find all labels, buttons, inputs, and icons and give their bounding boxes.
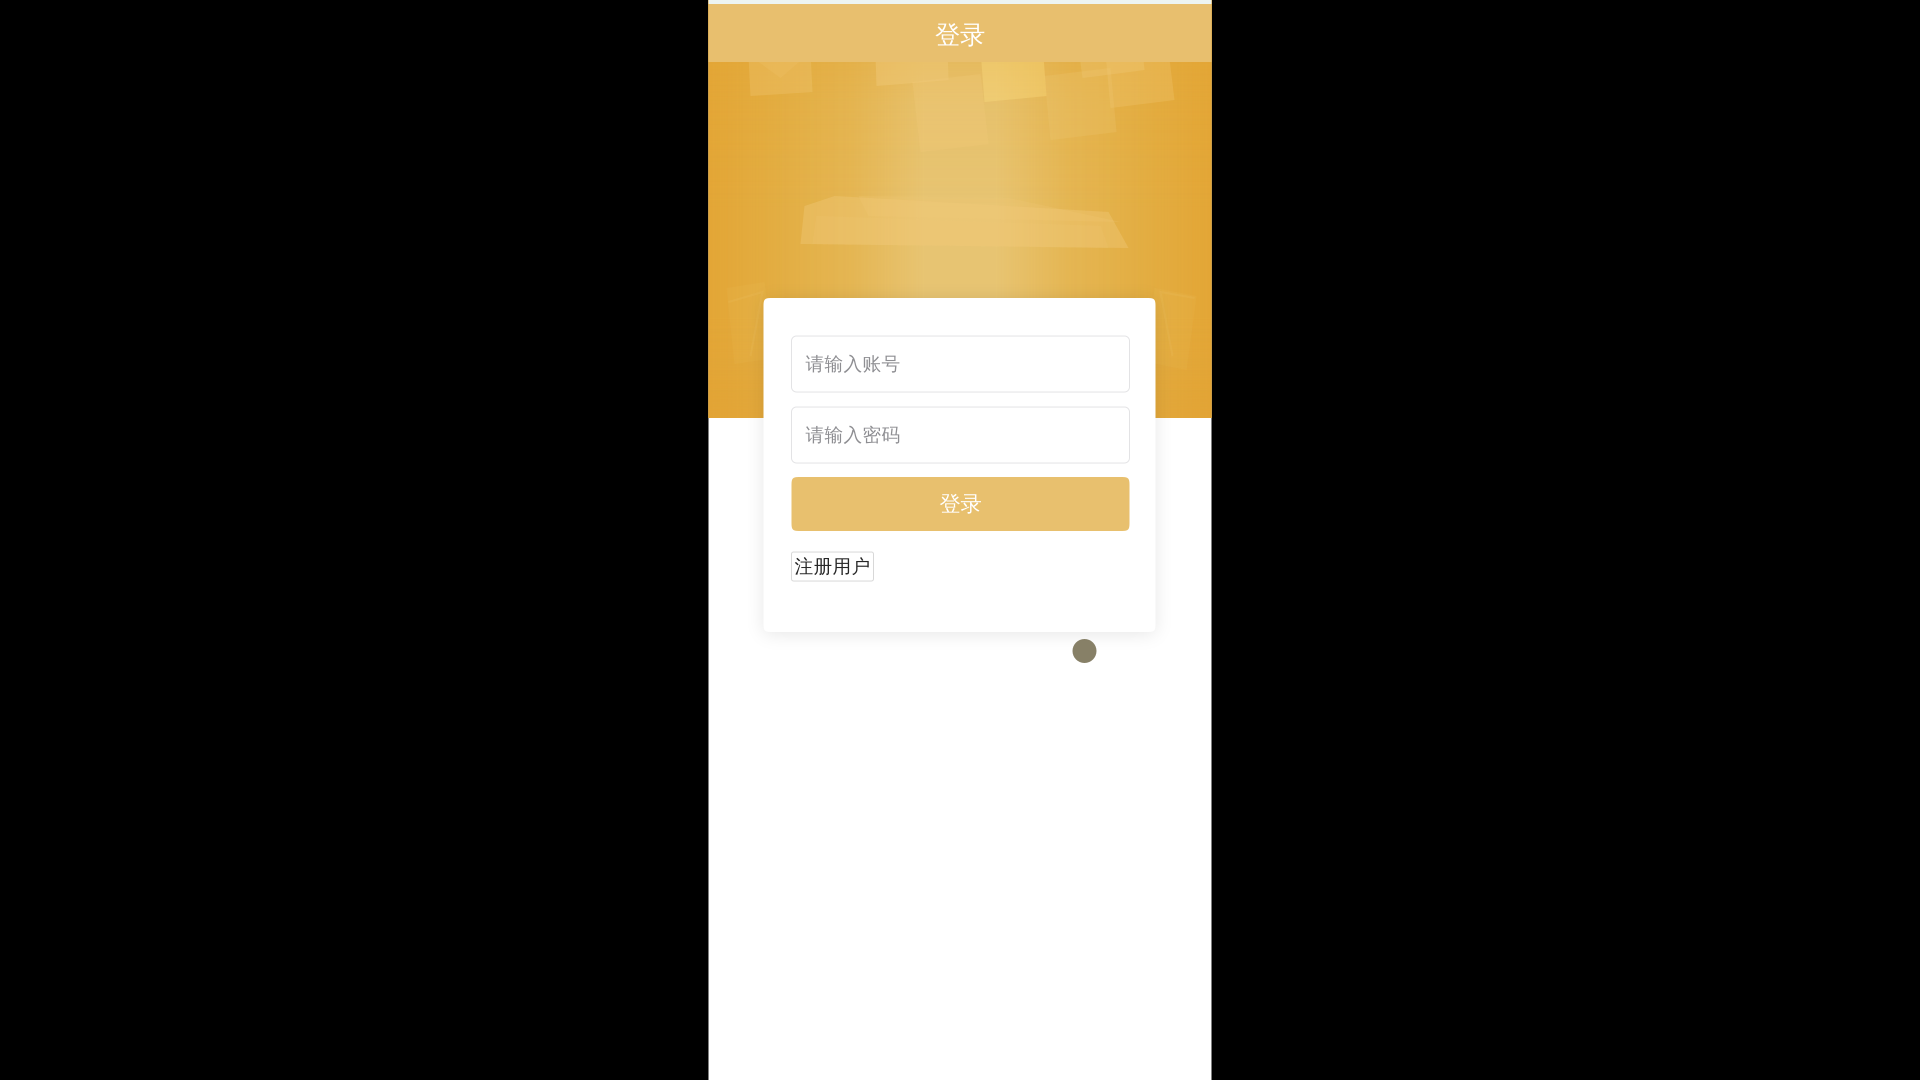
staticText: 注册用户 [794,555,870,578]
staticText: 登录 [935,19,985,50]
button[interactable]: 请输入密码 [791,407,1129,463]
staticText: 请输入账号 [805,352,900,375]
button[interactable]: 注册用户 [791,552,873,581]
button[interactable]: 登录 [791,477,1129,531]
staticText: 登录 [939,491,981,517]
button[interactable]: 请输入账号 [791,336,1129,392]
staticText: 请输入密码 [805,423,900,446]
